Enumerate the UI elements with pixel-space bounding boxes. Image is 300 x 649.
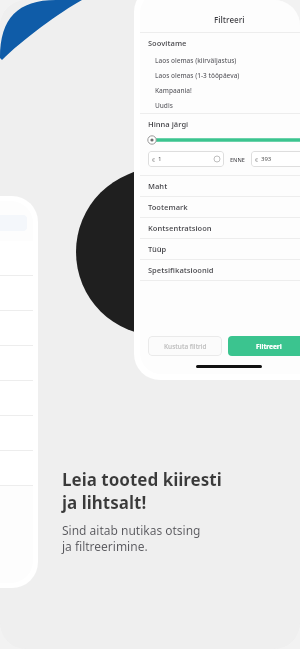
staticText: Soovitame	[148, 38, 187, 48]
staticText: Laos olemas (kiirväljastus)	[155, 56, 237, 65]
staticText: Kontsentratsioon	[148, 223, 212, 233]
staticText: Leia tooted kiiresti	[62, 468, 222, 491]
staticText: Laos olemas (1-3 tööpäeva)	[155, 71, 240, 80]
staticText: Uudis	[155, 101, 173, 110]
staticText: ENNE	[230, 156, 245, 163]
staticText: ja lihtsalt!	[62, 491, 147, 514]
staticText: 393	[261, 155, 272, 163]
button[interactable]: Filtreeri	[228, 336, 300, 356]
button[interactable]: Tootemark	[148, 197, 300, 217]
staticText: Hinna järgi	[148, 119, 189, 129]
staticText: Kustuta filtrid	[164, 342, 207, 351]
button[interactable]: Soovitame	[148, 33, 300, 53]
staticText: Sind aitab nutikas otsing	[62, 522, 201, 538]
button[interactable]: Price range slider	[148, 134, 300, 146]
button[interactable]: €	[251, 151, 300, 167]
staticText: Maht	[148, 181, 168, 191]
staticText: €	[255, 156, 259, 163]
staticText: 1	[158, 155, 162, 163]
button[interactable]: Kustuta filtrid	[148, 336, 222, 356]
button[interactable]: Spetsifikatsioonid	[148, 260, 300, 280]
staticText: Filtreeri	[256, 342, 282, 351]
staticText: €	[152, 156, 156, 163]
button[interactable]: Kontsentratsioon	[148, 218, 300, 238]
button[interactable]: Uudis	[155, 98, 300, 113]
button[interactable]: Laos olemas (1-3 tööpäeva)	[155, 68, 300, 83]
button[interactable]: Maht	[148, 176, 300, 196]
button[interactable]: Filtreeri	[140, 6, 300, 32]
staticText: Tootemark	[148, 202, 188, 212]
staticText: ja filtreerimine.	[62, 538, 148, 554]
button[interactable]: Hinna järgi	[148, 114, 300, 134]
button[interactable]: Kampaania!	[155, 83, 300, 98]
button[interactable]: €	[148, 151, 224, 167]
button[interactable]: Tüüp	[148, 239, 300, 259]
button[interactable]: Laos olemas (kiirväljastus)	[155, 53, 300, 68]
staticText: Kampaania!	[155, 86, 192, 95]
staticText: Tüüp	[148, 244, 167, 254]
staticText: Spetsifikatsioonid	[148, 265, 214, 275]
staticText: Filtreeri	[214, 14, 245, 25]
